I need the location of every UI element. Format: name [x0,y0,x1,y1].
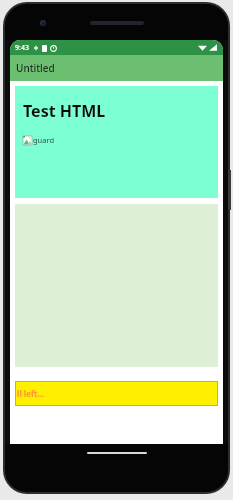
staticText: ll left... [17,388,45,399]
button[interactable]: Untitled [10,55,223,81]
staticText: guard [33,135,55,145]
other: Broken image placeholder [23,136,32,145]
button[interactable]: ll left... [15,381,218,406]
staticText: Test HTML [23,100,106,122]
staticText: 9:43 [15,43,29,53]
staticText: Untitled [16,61,55,75]
